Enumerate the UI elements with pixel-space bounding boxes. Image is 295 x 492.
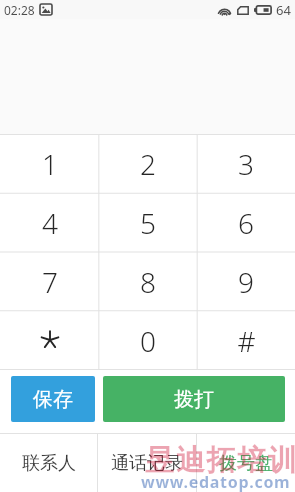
- button[interactable]: Key 8: [99, 252, 197, 311]
- staticText: #: [237, 322, 256, 360]
- staticText: 拨打: [174, 387, 214, 412]
- staticText: 拨号盘: [219, 452, 273, 475]
- button[interactable]: Key #: [197, 311, 295, 370]
- button[interactable]: Key 9: [197, 252, 295, 311]
- staticText: 02:28: [4, 2, 35, 18]
- staticText: 0: [140, 322, 156, 360]
- button[interactable]: Key 0: [99, 311, 197, 370]
- staticText: 通话记录: [111, 452, 183, 475]
- button[interactable]: Key 2: [99, 134, 197, 193]
- staticText: 2: [140, 145, 156, 183]
- button[interactable]: 拨号盘: [197, 434, 295, 492]
- button[interactable]: 拨打: [103, 376, 285, 422]
- staticText: 1: [42, 145, 58, 183]
- staticText: 8: [140, 263, 156, 301]
- button[interactable]: 联系人: [0, 434, 97, 492]
- staticText: 联系人: [22, 452, 76, 475]
- staticText: 保存: [33, 387, 73, 412]
- button[interactable]: 保存: [11, 376, 95, 422]
- staticText: 3: [238, 145, 254, 183]
- staticText: 昱迪拓培训: [144, 442, 295, 479]
- staticText: 9: [238, 263, 254, 301]
- button[interactable]: Key 5: [99, 193, 197, 252]
- staticText: 4: [42, 204, 58, 242]
- button[interactable]: Key *: [0, 311, 99, 370]
- staticText: 5: [140, 204, 156, 242]
- staticText: 7: [42, 263, 58, 301]
- button[interactable]: Key 3: [197, 134, 295, 193]
- button[interactable]: 通话记录: [98, 434, 196, 492]
- staticText: 6: [238, 204, 254, 242]
- button[interactable]: Key 7: [0, 252, 99, 311]
- staticText: www.edatop.com: [141, 471, 291, 492]
- button[interactable]: Key 1: [0, 134, 99, 193]
- staticText: 64: [276, 1, 291, 19]
- button[interactable]: Key 6: [197, 193, 295, 252]
- button[interactable]: Key 4: [0, 193, 99, 252]
